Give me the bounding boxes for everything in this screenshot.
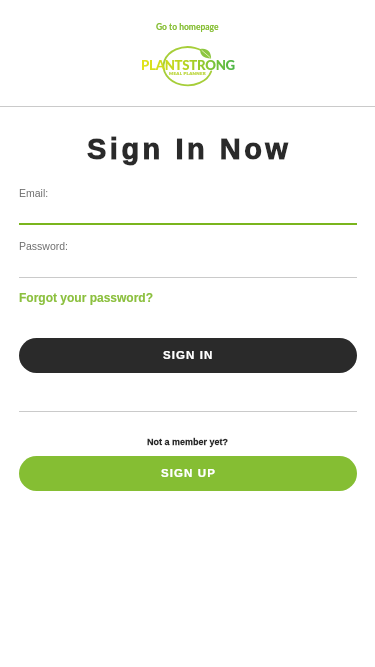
staticText: PLANTSTRONG bbox=[141, 57, 235, 73]
staticText: Sign In Now bbox=[87, 133, 292, 165]
staticText: MEAL PLANNER bbox=[169, 71, 206, 76]
staticText: Forgot your password? bbox=[19, 291, 154, 304]
staticText: Password: bbox=[19, 240, 69, 252]
button[interactable]: SIGN UP bbox=[19, 456, 357, 491]
button[interactable]: Forgot your password? bbox=[19, 291, 154, 304]
button[interactable]: Go to homepage bbox=[156, 22, 219, 32]
button[interactable]: SIGN IN bbox=[19, 338, 357, 373]
staticText: Email: bbox=[19, 187, 49, 199]
staticText: SIGN IN bbox=[163, 349, 214, 362]
staticText: Not a member yet? bbox=[147, 437, 229, 447]
staticText: Go to homepage bbox=[156, 22, 219, 32]
staticText: SIGN UP bbox=[161, 467, 216, 480]
